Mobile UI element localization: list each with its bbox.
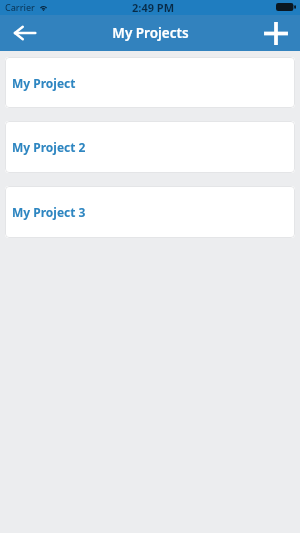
- staticText: My Project 2: [12, 139, 86, 155]
- button[interactable]: Back: [0, 15, 49, 51]
- button[interactable]: Add project: [251, 15, 300, 51]
- staticText: My Projects: [112, 24, 189, 42]
- button[interactable]: My Project: [5, 57, 295, 108]
- staticText: My Project 3: [12, 204, 86, 220]
- button[interactable]: My Project 2: [5, 121, 295, 173]
- staticText: My Project: [12, 75, 76, 91]
- staticText: 2:49 PM: [132, 0, 175, 15]
- button[interactable]: My Project 3: [5, 186, 295, 238]
- staticText: Carrier: [5, 1, 35, 13]
